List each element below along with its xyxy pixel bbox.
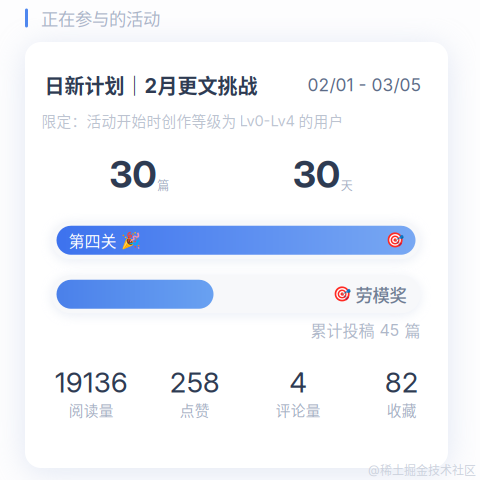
staticText: 天 [341,176,353,194]
button[interactable]: 82 [350,365,453,420]
button[interactable]: 🎯 [51,275,420,313]
staticText: 篇 [157,176,169,194]
staticText: 日新计划｜2月更文挑战 [44,70,257,99]
button[interactable]: 19136 [39,365,143,420]
staticText: 🎯 [385,232,403,249]
staticText: 02/01 - 03/05 [307,74,421,95]
staticText: 累计投稿 45 篇 [310,318,420,341]
staticText: 19136 [55,365,128,399]
button[interactable]: 日新计划｜2月更文挑战 [25,42,448,468]
button[interactable]: 第四关 🎉 [51,221,420,259]
staticText: 258 [170,365,220,399]
staticText: 阅读量 [69,399,114,420]
staticText: 30 [293,152,340,197]
button[interactable]: 4 [246,365,350,420]
staticText: @稀土掘金技术社区 [368,461,476,478]
staticText: 30 [109,152,156,197]
button[interactable]: 258 [143,365,246,420]
staticText: 第四关 🎉 [68,229,140,252]
staticText: 收藏 [387,399,417,420]
staticText: 82 [385,365,419,399]
staticText: 劳模奖 [355,282,406,307]
staticText: 正在参与的活动 [41,5,160,31]
staticText: 🎯 [332,286,350,303]
staticText: 4 [289,365,307,399]
staticText: 评论量 [276,399,321,420]
button[interactable]: 正在参与的活动 [25,8,225,28]
staticText: 限定：活动开始时创作等级为 Lv0-Lv4 的用户 [41,110,343,131]
staticText: 点赞 [180,399,210,420]
